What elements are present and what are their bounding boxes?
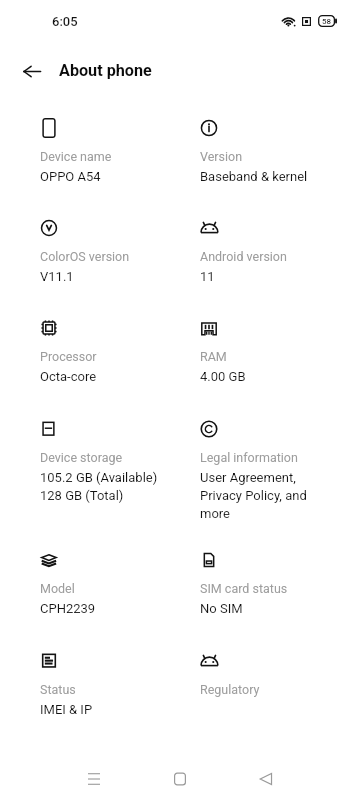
button[interactable]: Version xyxy=(200,119,350,178)
staticText: Regulatory xyxy=(200,682,260,697)
staticText: OPPO A54 xyxy=(40,169,101,184)
button[interactable]: Processor xyxy=(40,319,190,378)
button[interactable]: Back xyxy=(16,55,48,87)
button[interactable]: Regulatory xyxy=(200,652,350,690)
button[interactable]: Recents xyxy=(66,754,122,800)
button[interactable]: Model xyxy=(40,551,190,610)
staticText: Legal information xyxy=(200,450,298,465)
staticText: 11 xyxy=(200,269,215,284)
staticText: 4.00 GB xyxy=(200,369,246,384)
staticText: Octa-core xyxy=(40,369,97,384)
staticText: User Agreement, Privacy Policy, and more xyxy=(200,470,307,521)
staticText: Model xyxy=(40,581,75,596)
staticText: ColorOS version xyxy=(40,249,130,264)
staticText: Version xyxy=(200,149,243,164)
button[interactable]: ColorOS version xyxy=(40,219,190,278)
staticText: IMEI & IP xyxy=(40,702,93,717)
staticText: 105.2 GB (Available) 128 GB (Total) xyxy=(40,470,158,503)
staticText: Status xyxy=(40,682,76,697)
button[interactable]: Home xyxy=(152,754,208,800)
staticText: Baseband & kernel xyxy=(200,169,308,184)
staticText: About phone xyxy=(59,61,152,80)
button[interactable]: Device name xyxy=(40,119,190,178)
staticText: Processor xyxy=(40,349,97,364)
staticText: No SIM xyxy=(200,601,243,616)
button[interactable]: SIM card status xyxy=(200,551,350,610)
button[interactable]: Status xyxy=(40,652,190,711)
button[interactable]: Android version xyxy=(200,219,350,278)
staticText: Device storage xyxy=(40,450,123,465)
button[interactable]: Device storage xyxy=(40,420,190,496)
staticText: CPH2239 xyxy=(40,601,96,616)
button[interactable]: Legal information xyxy=(200,420,350,514)
staticText: 58 xyxy=(322,17,332,26)
staticText: SIM card status xyxy=(200,581,288,596)
button[interactable]: RAM xyxy=(200,319,350,378)
staticText: Android version xyxy=(200,249,287,264)
staticText: V11.1 xyxy=(40,269,74,284)
staticText: Device name xyxy=(40,149,112,164)
button[interactable]: Back xyxy=(238,754,294,800)
staticText: RAM xyxy=(200,349,227,364)
staticText: 6:05 xyxy=(52,14,78,29)
